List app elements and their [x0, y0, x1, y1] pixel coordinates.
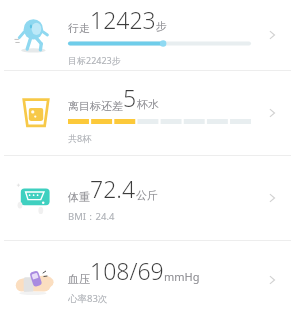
- staticText: 行走: [68, 21, 90, 35]
- staticText: 公斤: [136, 188, 158, 202]
- staticText: 心率83次: [68, 292, 108, 305]
- button[interactable]: Steps detail: [0, 0, 295, 70]
- staticText: 72.4: [90, 173, 136, 204]
- staticText: 体重: [68, 190, 90, 204]
- staticText: 共8杯: [68, 132, 92, 144]
- staticText: 离目标还差: [68, 99, 123, 113]
- staticText: 步: [156, 19, 167, 33]
- button[interactable]: Blood pressure detail: [0, 241, 295, 318]
- staticText: 杯水: [137, 97, 159, 111]
- staticText: 目标22423步: [68, 54, 121, 66]
- staticText: mmHg: [164, 269, 200, 284]
- staticText: 5: [123, 82, 137, 113]
- button[interactable]: Water detail: [0, 71, 295, 155]
- button[interactable]: Weight detail: [0, 156, 295, 240]
- staticText: 12423: [90, 4, 156, 35]
- staticText: 108/69: [90, 255, 164, 286]
- staticText: 血压: [68, 272, 90, 286]
- staticText: BMI：24.4: [68, 210, 115, 223]
